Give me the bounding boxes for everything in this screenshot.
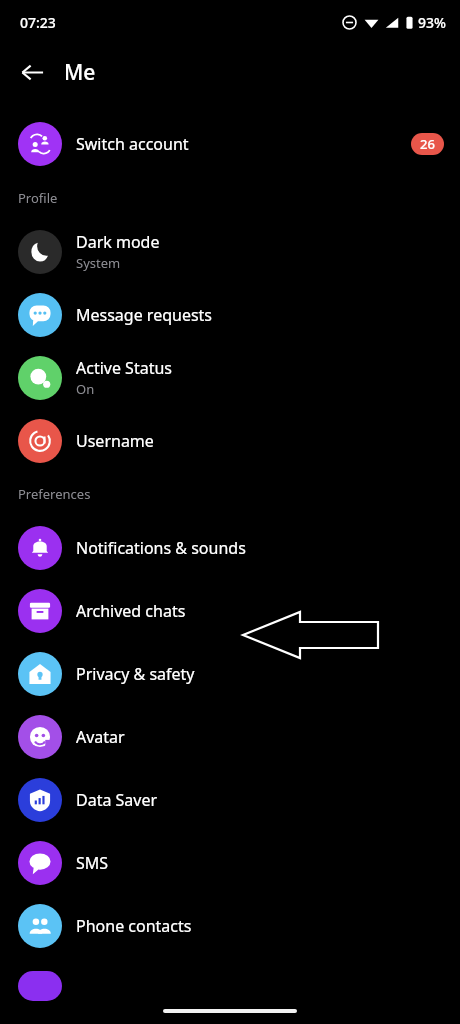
staticText: Username [76,430,154,452]
staticText: System [76,254,121,272]
staticText: Preferences [18,485,91,503]
button[interactable]: Privacy & safety [0,642,460,705]
staticText: Switch account [76,133,189,155]
button[interactable]: Notifications & sounds [0,516,460,579]
button[interactable]: Dark mode [0,220,460,283]
button[interactable]: Data Saver [0,768,460,831]
staticText: Me [64,58,96,87]
staticText: Data Saver [76,789,158,811]
staticText: Profile [18,189,58,207]
staticText: 26 [420,135,435,153]
staticText: Active Status [76,357,172,379]
staticText: Message requests [76,304,213,326]
staticText: Notifications & sounds [76,537,246,559]
button[interactable]: Avatar [0,705,460,768]
staticText: 93% [418,13,446,32]
staticText: Privacy & safety [76,663,195,685]
button[interactable]: Active Status [0,346,460,409]
staticText: Avatar [76,726,125,748]
button[interactable]: SMS [0,831,460,894]
staticText: Dark mode [76,231,160,253]
button[interactable]: Message requests [0,283,460,346]
staticText: SMS [76,852,109,874]
button[interactable]: Phone contacts [0,894,460,957]
staticText: On [76,380,95,398]
button[interactable]: Archived chats [0,579,460,642]
button[interactable]: Switch account [0,112,460,176]
staticText: Archived chats [76,600,186,622]
staticText: Phone contacts [76,915,192,937]
staticText: 07:23 [20,13,56,32]
button[interactable]: Back [8,48,56,96]
button[interactable]: Username [0,409,460,472]
